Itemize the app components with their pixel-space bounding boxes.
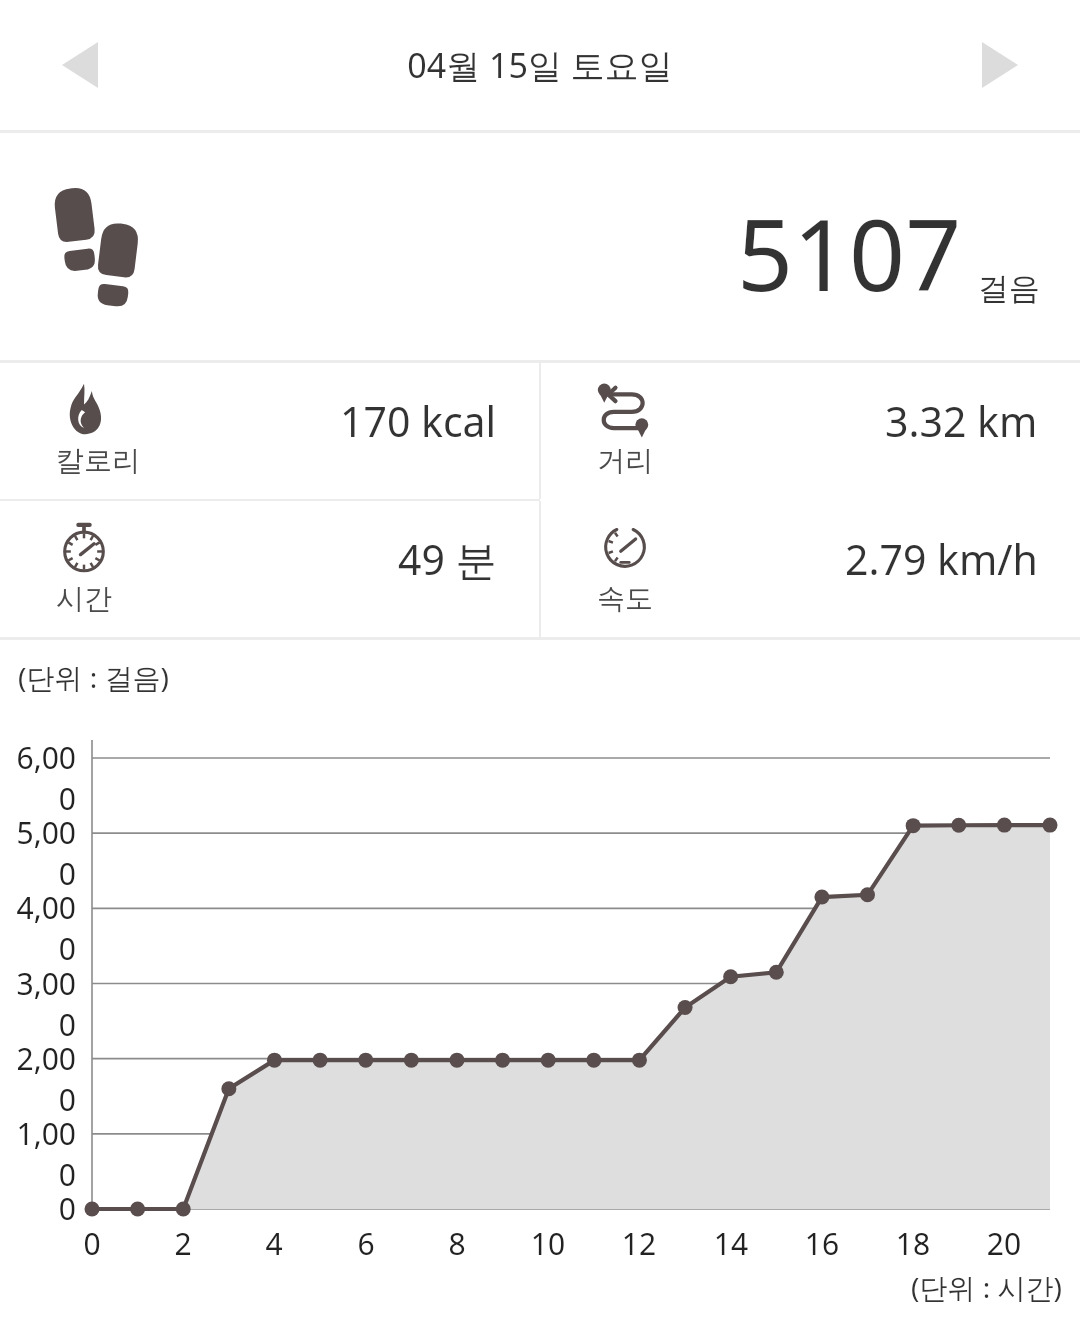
staticText: 16	[792, 1223, 852, 1264]
staticText: 칼로리	[56, 443, 140, 478]
staticText: 20	[974, 1223, 1034, 1264]
staticText: 6,000	[0, 737, 76, 819]
button[interactable]: Time	[0, 501, 539, 637]
staticText: 18	[883, 1223, 943, 1264]
staticText: (단위 : 걸음)	[18, 658, 169, 696]
staticText: 5107	[737, 186, 962, 319]
staticText: 시간	[56, 581, 112, 616]
staticText: 3,000	[0, 963, 76, 1045]
staticText: 속도	[597, 581, 653, 616]
staticText: 2	[153, 1223, 213, 1264]
staticText: (단위 : 시간)	[911, 1268, 1062, 1306]
staticText: 2.79 km/h	[845, 531, 1038, 587]
staticText: 49 분	[398, 531, 497, 587]
staticText: 8	[427, 1223, 487, 1264]
staticText: 4,000	[0, 887, 76, 969]
staticText: 5,000	[0, 812, 76, 894]
staticText: 170 kcal	[340, 393, 497, 449]
staticText: 3.32 km	[885, 393, 1038, 449]
staticText: 2,000	[0, 1038, 76, 1120]
button[interactable]: Next day	[948, 13, 1052, 117]
staticText: 4	[244, 1223, 304, 1264]
button[interactable]: Speed	[541, 501, 1080, 637]
staticText: 14	[701, 1223, 761, 1264]
staticText: 1,000	[0, 1113, 76, 1195]
staticText: 0	[0, 1188, 76, 1229]
staticText: 12	[609, 1223, 669, 1264]
staticText: 6	[336, 1223, 396, 1264]
staticText: 걸음	[978, 269, 1040, 308]
staticText: 10	[518, 1223, 578, 1264]
staticText: 0	[62, 1223, 122, 1264]
button[interactable]: Previous day	[28, 13, 132, 117]
staticText: 04월 15일 토요일	[407, 42, 673, 88]
button[interactable]: 5107	[0, 133, 1080, 360]
button[interactable]: Distance	[541, 363, 1080, 499]
button[interactable]: Calories	[0, 363, 539, 499]
staticText: 거리	[597, 443, 653, 478]
